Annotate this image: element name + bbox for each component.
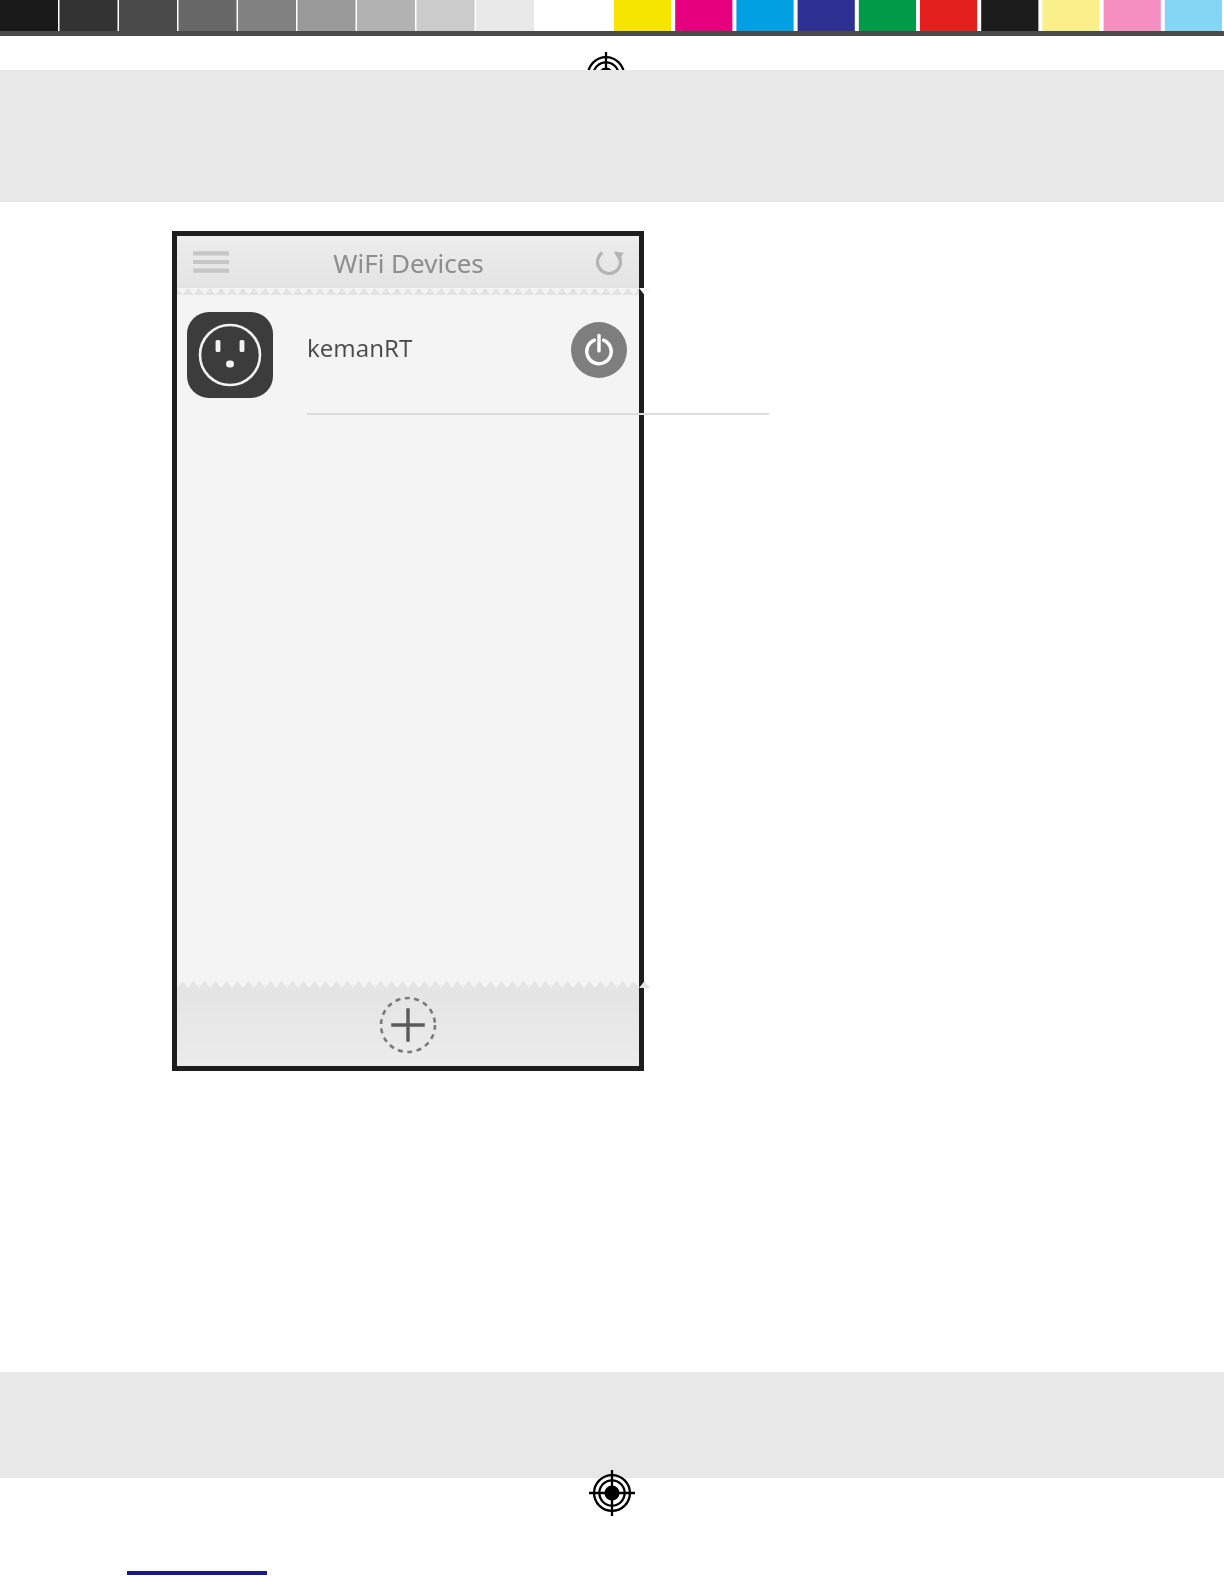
other: Smart outlet bbox=[187, 312, 273, 398]
staticText: kemanRT bbox=[307, 331, 413, 364]
button[interactable]: Power toggle bbox=[571, 322, 627, 378]
button[interactable]: Menu bbox=[189, 242, 233, 282]
staticText: WiFi Devices bbox=[333, 245, 484, 280]
button[interactable]: Smart outlet bbox=[177, 295, 639, 415]
button[interactable]: Refresh bbox=[587, 240, 631, 284]
button[interactable]: Add device bbox=[378, 995, 438, 1055]
